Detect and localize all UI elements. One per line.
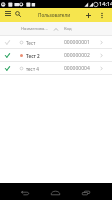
- button[interactable]: Recent apps: [78, 185, 93, 200]
- staticText: 14:14: [99, 0, 112, 8]
- staticText: Тест: [26, 40, 36, 46]
- button[interactable]: Add: [82, 9, 94, 21]
- staticText: 000000001: [64, 39, 90, 46]
- staticText: 000000002: [64, 52, 90, 59]
- button[interactable]: Тест: [0, 36, 112, 49]
- button[interactable]: Search: [12, 8, 23, 19]
- staticText: Наименова...: [21, 26, 48, 32]
- button[interactable]: тест 4: [0, 62, 112, 75]
- button[interactable]: Back: [17, 185, 32, 200]
- staticText: 000000004: [64, 65, 90, 72]
- staticText: Тест 2: [26, 53, 40, 59]
- button[interactable]: Navigation menu: [2, 8, 13, 19]
- button[interactable]: More options: [96, 9, 108, 21]
- staticText: тест 4: [26, 66, 39, 72]
- staticText: Пользователи: [38, 12, 71, 18]
- button[interactable]: Тест 2: [0, 49, 112, 62]
- staticText: Код: [64, 26, 72, 32]
- button[interactable]: Home: [48, 185, 63, 200]
